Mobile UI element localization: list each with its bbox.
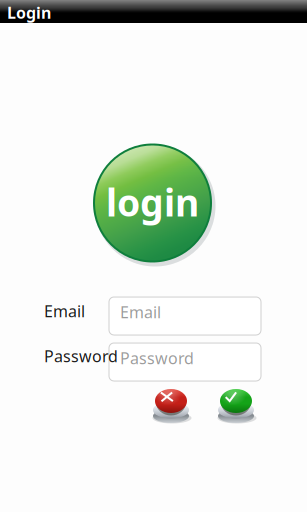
- staticText: Email: [44, 300, 85, 322]
- staticText: Email: [120, 301, 161, 323]
- button[interactable]: Cancel: [151, 382, 191, 426]
- staticText: Login: [7, 2, 51, 23]
- staticText: Password: [44, 345, 118, 367]
- button[interactable]: Email: [109, 297, 261, 335]
- button[interactable]: Confirm: [216, 382, 256, 426]
- button[interactable]: Password: [109, 343, 261, 381]
- staticText: Password: [120, 347, 194, 369]
- staticText: login: [106, 177, 199, 227]
